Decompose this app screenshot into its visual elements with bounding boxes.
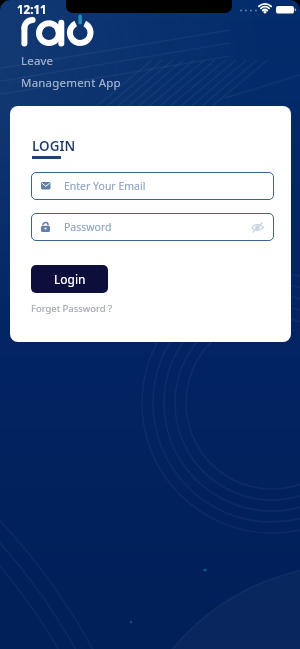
button[interactable]	[251, 222, 264, 233]
button[interactable]: Password	[31, 213, 274, 241]
staticText: Enter Your Email	[64, 179, 146, 193]
staticText: Login	[54, 271, 86, 287]
button[interactable]: Login	[31, 265, 108, 293]
button[interactable]: Forget Password ?	[31, 302, 113, 315]
staticText: Password	[64, 220, 251, 234]
staticText: LOGIN	[32, 137, 76, 155]
staticText: Leave	[21, 53, 54, 69]
button[interactable]: Enter Your Email	[31, 172, 274, 200]
staticText: Management App	[21, 75, 121, 91]
staticText: 12:11	[17, 2, 47, 18]
